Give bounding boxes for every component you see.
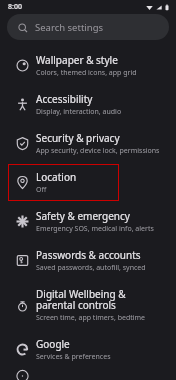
staticText: Digital Wellbeing & parental controls: [36, 287, 164, 312]
staticText: Display, interaction, audio: [36, 107, 122, 117]
staticText: Security & privacy: [36, 131, 120, 145]
button[interactable]: Passwords & accounts: [8, 242, 168, 279]
staticText: App security, device lock, permissions: [36, 146, 160, 156]
button[interactable]: System: [8, 370, 168, 379]
button[interactable]: Digital Wellbeing & parental controls: [8, 281, 168, 329]
button[interactable]: Accessibility: [8, 86, 168, 123]
staticText: Colors, themed icons, app grid: [36, 68, 137, 78]
staticText: Wallpaper & style: [36, 53, 118, 67]
staticText: Saved passwords, autofill, synced accoun…: [36, 263, 164, 273]
staticText: Location: [36, 170, 77, 184]
button[interactable]: Location: [8, 164, 119, 201]
staticText: Services & preferences: [36, 352, 111, 362]
staticText: Safety & emergency: [36, 209, 130, 223]
staticText: Google: [36, 337, 70, 351]
button[interactable]: Wallpaper & style: [8, 47, 168, 84]
staticText: Emergency SOS, medical info, alerts: [36, 224, 154, 234]
staticText: Screen time, app timers, bedtime schedul…: [36, 313, 164, 323]
staticText: 8:00: [8, 2, 22, 12]
staticText: Accessibility: [36, 92, 93, 106]
staticText: Off: [36, 185, 47, 195]
button[interactable]: Safety & emergency: [8, 203, 168, 240]
button[interactable]: Search settings: [7, 14, 169, 40]
staticText: Passwords & accounts: [36, 248, 141, 262]
staticText: Search settings: [35, 21, 104, 34]
button[interactable]: Google: [8, 331, 168, 368]
button[interactable]: Security & privacy: [8, 125, 168, 162]
